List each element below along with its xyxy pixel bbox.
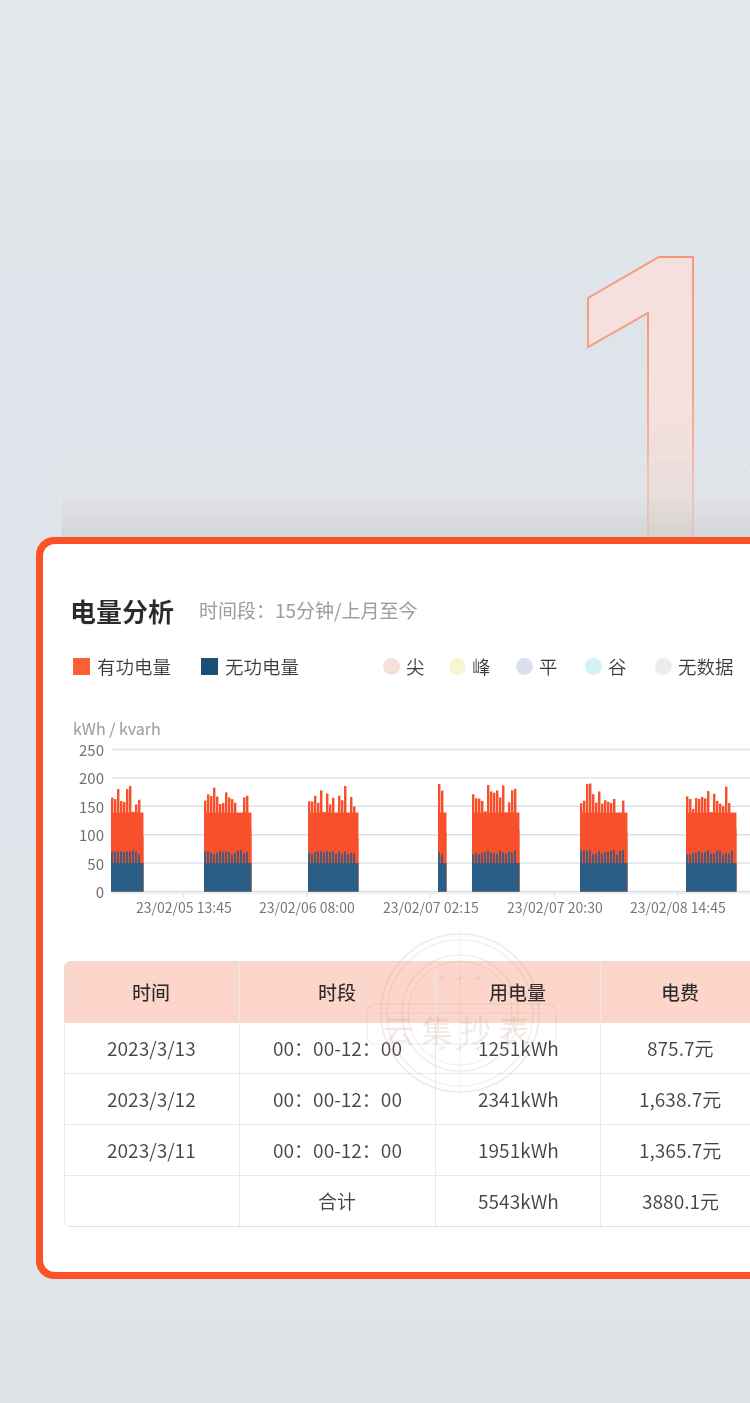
button[interactable]: 有功电量: [73, 653, 172, 680]
button[interactable]: 平: [516, 653, 558, 680]
staticText: 2023/3/11: [107, 1136, 196, 1164]
staticText: 平: [539, 653, 558, 680]
staticText: 1,638.7元: [639, 1085, 722, 1113]
staticText: 谷: [608, 653, 627, 680]
button[interactable]: 无数据: [655, 653, 734, 680]
staticText: 23/02/07 02:15: [383, 897, 479, 917]
staticText: 时段: [318, 978, 357, 1006]
staticText: 1251kWh: [478, 1034, 559, 1062]
staticText: 1951kWh: [478, 1136, 559, 1164]
button[interactable]: 谷: [585, 653, 627, 680]
staticText: 00：00-12：00: [273, 1034, 402, 1062]
staticText: 875.7元: [647, 1034, 714, 1062]
staticText: 合计: [318, 1187, 357, 1215]
staticText: 1,365.7元: [639, 1136, 722, 1164]
staticText: 2023/3/12: [107, 1085, 196, 1113]
staticText: 云集抄表: [383, 1006, 537, 1051]
staticText: 200: [52, 767, 104, 789]
staticText: 用电量: [489, 978, 547, 1006]
staticText: 3880.1元: [642, 1187, 720, 1215]
staticText: 2023/3/13: [107, 1034, 196, 1062]
staticText: 时间段：15分钟/上月至今: [199, 596, 418, 624]
staticText: 23/02/05 13:45: [136, 897, 232, 917]
button[interactable]: 2023/3/12: [64, 1074, 750, 1124]
staticText: 0: [52, 881, 104, 903]
staticText: 50: [52, 853, 104, 875]
staticText: 23/02/07 20:30: [507, 897, 603, 917]
staticText: 时间: [132, 978, 171, 1006]
button[interactable]: 峰: [449, 653, 491, 680]
staticText: kWh / kvarh: [73, 716, 161, 739]
staticText: 2341kWh: [478, 1085, 559, 1113]
button[interactable]: 2023/3/13: [64, 1023, 750, 1073]
staticText: 00：00-12：00: [273, 1085, 402, 1113]
staticText: 250: [52, 739, 104, 761]
staticText: 100: [52, 824, 104, 846]
staticText: 00：00-12：00: [273, 1136, 402, 1164]
staticText: 23/02/06 08:00: [259, 897, 355, 917]
staticText: 无功电量: [225, 653, 300, 680]
staticText: 23/02/08 14:45: [630, 897, 726, 917]
button[interactable]: 尖: [383, 653, 425, 680]
staticText: 5543kWh: [478, 1187, 559, 1215]
staticText: 尖: [406, 653, 425, 680]
staticText: 峰: [472, 653, 491, 680]
staticText: 150: [52, 796, 104, 818]
button[interactable]: 2023/3/11: [64, 1125, 750, 1175]
staticText: 电量分析: [70, 592, 175, 630]
staticText: 有功电量: [97, 653, 172, 680]
button[interactable]: 合计: [64, 1176, 750, 1226]
staticText: 电费: [661, 978, 700, 1006]
button[interactable]: 无功电量: [201, 653, 300, 680]
staticText: 无数据: [678, 653, 734, 680]
